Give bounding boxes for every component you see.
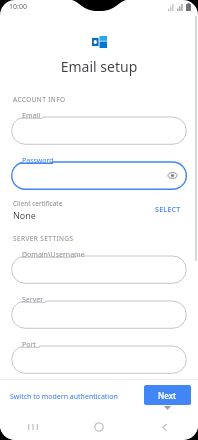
staticText: Password — [22, 156, 54, 166]
staticText: Domain\Username — [22, 250, 85, 260]
button[interactable]: Switch to modern authentication — [6, 388, 122, 406]
staticText: Server — [22, 295, 44, 305]
button[interactable]: Recent apps — [0, 414, 66, 440]
button[interactable]: Show password — [166, 169, 179, 182]
staticText: Switch to modern authentication — [10, 392, 118, 402]
button[interactable]: Domain\Username — [11, 250, 187, 284]
button[interactable]: Next — [144, 385, 191, 405]
staticText: ACCOUNT INFO — [13, 95, 66, 104]
staticText: Email setup — [11, 57, 187, 76]
button[interactable]: Port — [11, 340, 187, 374]
staticText: None — [13, 209, 36, 221]
staticText: Port — [22, 340, 36, 350]
staticText: Client certificate — [13, 199, 63, 208]
staticText: 10:00 — [9, 2, 27, 12]
staticText: Email — [22, 111, 40, 121]
staticText: SELECT — [155, 205, 181, 215]
button[interactable]: Back — [132, 414, 198, 440]
button[interactable]: Password — [11, 156, 187, 190]
staticText: Next — [158, 390, 177, 401]
staticText: SERVER SETTINGS — [13, 234, 74, 243]
button[interactable]: Email — [11, 111, 187, 145]
button[interactable]: Home — [66, 414, 132, 440]
button[interactable]: SELECT — [151, 202, 185, 218]
button[interactable]: Server — [11, 295, 187, 329]
